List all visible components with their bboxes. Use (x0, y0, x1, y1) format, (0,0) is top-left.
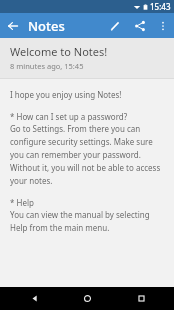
staticText: I hope you enjoy using Notes! (10, 89, 122, 100)
button[interactable]: Edit (102, 13, 127, 38)
staticText: 15:43 (150, 1, 171, 12)
button[interactable]: Share (127, 13, 152, 38)
button[interactable]: Back (14, 287, 54, 310)
staticText: * Help You can view the manual by select… (10, 197, 166, 233)
staticText: 8 minutes ago, 15:45 (10, 61, 84, 71)
button[interactable]: Recents (121, 287, 161, 310)
staticText: Welcome to Notes! (10, 44, 108, 59)
button[interactable]: Home (67, 287, 107, 310)
button[interactable]: More options (152, 15, 174, 37)
button[interactable]: Back (0, 13, 25, 38)
staticText: Notes (28, 17, 65, 35)
staticText: * How can I set up a password? Go to Set… (10, 111, 166, 186)
